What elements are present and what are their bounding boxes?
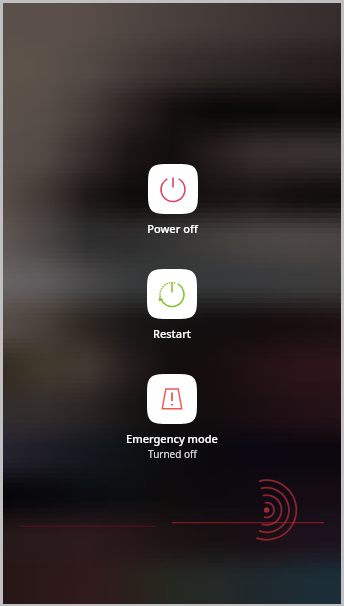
staticText: Turned off [148,447,197,461]
button[interactable]: Emergency mode [116,374,228,461]
staticText: Restart [153,326,191,341]
button[interactable]: Power off [137,164,208,236]
button[interactable]: Restart [137,269,207,341]
staticText: Emergency mode [126,431,218,446]
staticText: Power off [147,221,198,236]
